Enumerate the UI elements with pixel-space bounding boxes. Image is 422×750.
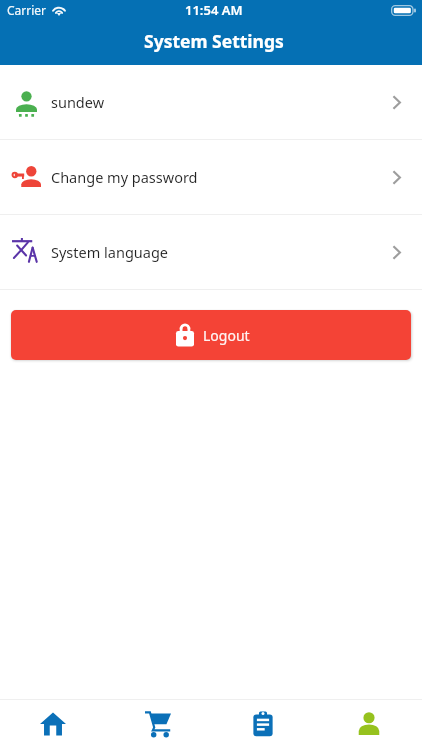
staticText: System language — [51, 242, 168, 262]
button[interactable]: Change my password — [0, 140, 422, 214]
button[interactable]: Profile — [316, 700, 422, 750]
button[interactable]: System language — [0, 215, 422, 289]
button[interactable]: sundew — [0, 65, 422, 139]
staticText: System Settings — [144, 29, 284, 53]
staticText: sundew — [51, 92, 105, 112]
button[interactable]: Home — [0, 700, 105, 750]
staticText: Carrier — [7, 2, 47, 18]
staticText: 11:54 AM — [185, 1, 243, 19]
button[interactable]: Cart — [105, 700, 210, 750]
staticText: Logout — [203, 326, 250, 345]
staticText: Change my password — [51, 167, 198, 187]
button[interactable]: Orders — [210, 700, 316, 750]
button[interactable]: Logout — [11, 310, 411, 360]
